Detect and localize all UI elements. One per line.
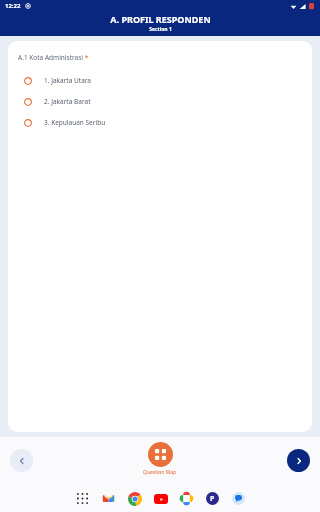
button[interactable]: Messages (231, 491, 246, 506)
staticText: A.1 Kota Administrasi (18, 53, 83, 62)
staticText: * (83, 53, 89, 62)
staticText: 2. Jakarta Barat (44, 97, 91, 106)
button[interactable]: PhonePe (205, 491, 220, 506)
staticText: 12:22 (5, 2, 21, 10)
button[interactable]: 2. Jakarta Barat (18, 97, 302, 106)
button[interactable]: Google Photos (179, 491, 194, 506)
button[interactable]: Chrome (127, 491, 142, 506)
button[interactable]: 3. Kepulauan Seribu (18, 118, 302, 127)
button[interactable]: Previous (10, 449, 33, 472)
button[interactable]: Gmail (101, 491, 116, 506)
button[interactable]: All apps (75, 491, 90, 506)
button[interactable]: 1. Jakarta Utara (18, 76, 302, 85)
button[interactable]: Question Map (143, 442, 177, 476)
staticText: Section 1 (149, 26, 172, 33)
staticText: 3. Kepulauan Seribu (44, 118, 106, 127)
staticText: 1. Jakarta Utara (44, 76, 92, 85)
staticText: Question Map (143, 469, 177, 476)
staticText: P (210, 494, 215, 504)
button[interactable]: YouTube (153, 491, 168, 506)
button[interactable]: Next (287, 449, 310, 472)
staticText: A. PROFIL RESPONDEN (110, 13, 211, 25)
